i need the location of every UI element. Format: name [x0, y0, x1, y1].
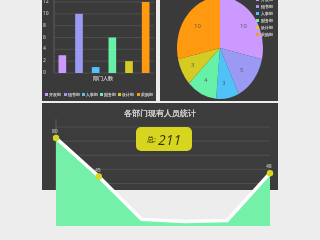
- button[interactable]: 80: [42, 103, 278, 190]
- staticText: 80: [52, 128, 58, 135]
- staticText: 采购部: [141, 92, 153, 97]
- staticText: 销售部: [261, 4, 273, 9]
- staticText: 8: [43, 22, 46, 29]
- staticText: 人事部: [86, 92, 98, 97]
- staticText: 12: [43, 0, 49, 5]
- staticText: 48: [266, 163, 272, 170]
- staticText: 设计部: [261, 25, 273, 30]
- button[interactable]: 10: [160, 0, 278, 101]
- staticText: 开发部: [261, 0, 273, 2]
- staticText: 3: [222, 79, 226, 87]
- staticText: 3: [191, 61, 195, 69]
- staticText: 4: [43, 45, 46, 52]
- staticText: 45: [95, 167, 101, 174]
- staticText: 设计部: [122, 92, 134, 97]
- staticText: 财务部: [104, 92, 116, 97]
- staticText: 4: [204, 76, 208, 84]
- staticText: 10: [240, 22, 247, 30]
- staticText: 211: [158, 130, 182, 149]
- staticText: 2: [43, 57, 46, 64]
- staticText: 开发部: [49, 92, 61, 97]
- staticText: 部门人数: [93, 75, 113, 81]
- staticText: 人事部: [261, 11, 273, 16]
- staticText: 5: [240, 66, 244, 74]
- staticText: 10: [43, 10, 49, 17]
- staticText: 采购部: [261, 32, 273, 37]
- staticText: 财务部: [261, 18, 273, 23]
- staticText: 各部门现有人员统计: [124, 108, 196, 118]
- button[interactable]: 12: [42, 0, 156, 101]
- staticText: 0: [43, 69, 46, 76]
- staticText: 10: [194, 22, 201, 30]
- staticText: 销售部: [68, 92, 80, 97]
- button[interactable]: 总人数 211: [136, 127, 192, 151]
- staticText: 6: [43, 34, 46, 41]
- staticText: 总:: [147, 135, 158, 145]
